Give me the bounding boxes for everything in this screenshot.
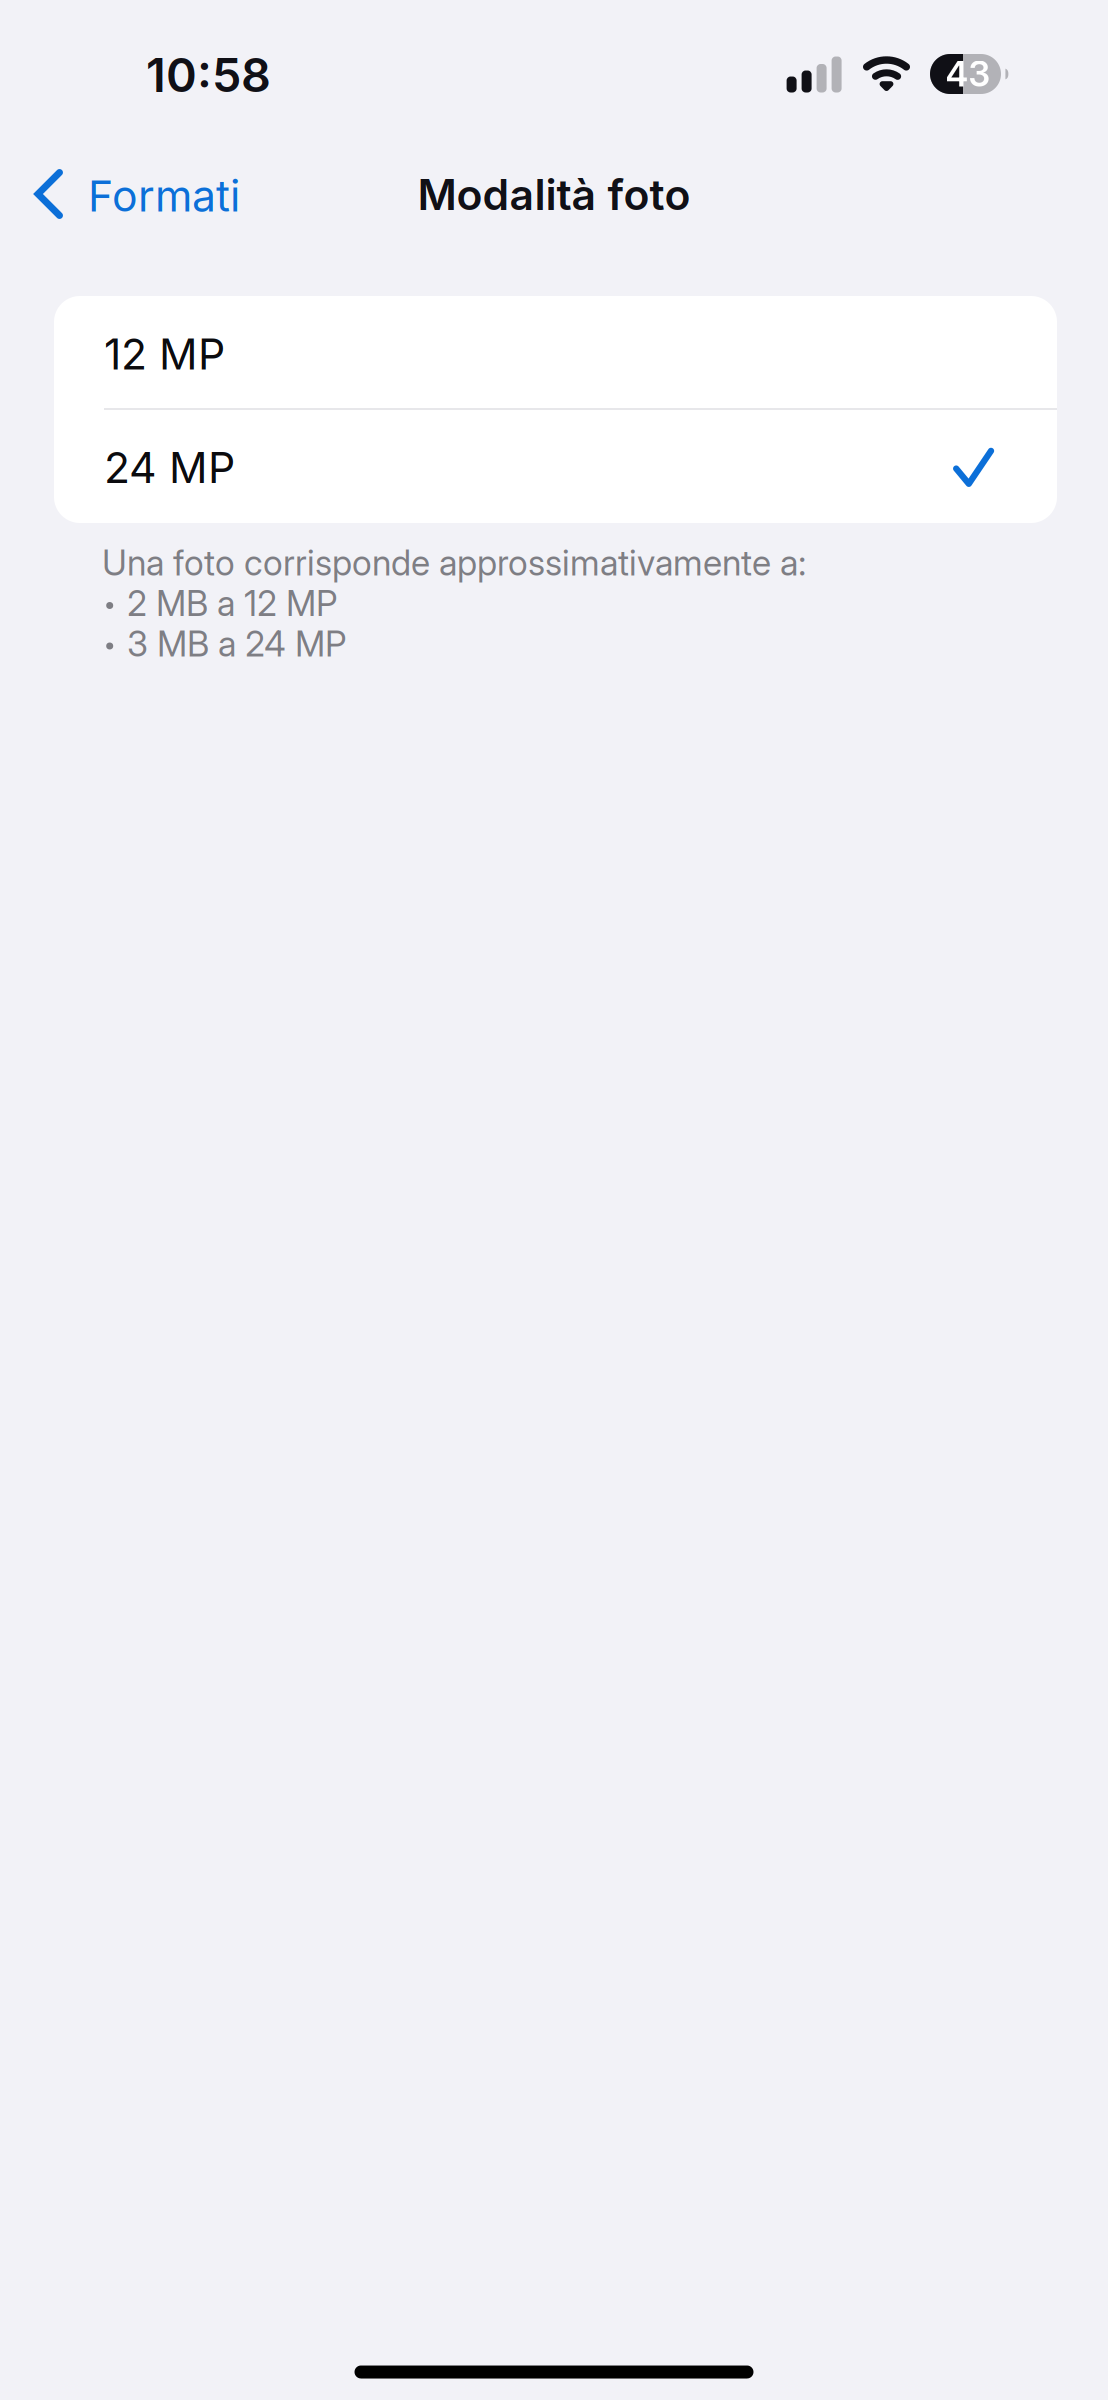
staticText: 12 MP — [104, 328, 225, 380]
staticText: Formati — [88, 170, 240, 222]
staticText: 43 — [945, 53, 990, 95]
staticText: 10:58 — [146, 47, 271, 103]
staticText: 3 MB a 24 MP — [127, 623, 347, 665]
button[interactable]: 12 MP — [54, 296, 1057, 408]
staticText: 2 MB a 12 MP — [127, 582, 338, 624]
button[interactable]: Back to Formati — [0, 146, 262, 242]
staticText: 24 MP — [104, 442, 235, 493]
button[interactable]: 24 MP — [54, 410, 1057, 523]
staticText: Modalità foto — [417, 169, 690, 220]
staticText: Una foto corrisponde approssimativamente… — [102, 542, 806, 584]
